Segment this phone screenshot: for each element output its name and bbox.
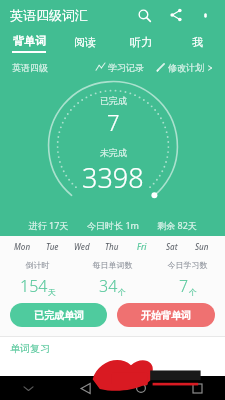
button[interactable]: 背单词 [0, 30, 57, 56]
staticText: Mon [14, 241, 31, 252]
button[interactable]: Sun [187, 236, 217, 256]
button[interactable]: 阅读 [57, 30, 113, 56]
staticText: 开始背单词 [141, 309, 191, 322]
staticText: 3398 [82, 159, 144, 196]
staticText: Thu [105, 241, 119, 252]
staticText: 英语四级词汇 [10, 7, 88, 23]
staticText: 倒计时 [0, 260, 75, 270]
button[interactable]: 我 [169, 30, 225, 56]
button[interactable]: Share [165, 4, 187, 26]
staticText: 每日单词数 [75, 260, 150, 270]
staticText: 今日学习数 [150, 260, 225, 270]
staticText: 7 [179, 275, 189, 297]
button[interactable]: Thu [97, 236, 127, 256]
button[interactable]: More options [195, 5, 215, 25]
staticText: 天 [48, 287, 56, 297]
staticText: 已完成 [100, 95, 127, 106]
staticText: 背单词 [13, 34, 46, 48]
staticText: 修改计划 [168, 62, 204, 73]
button[interactable]: 听力 [113, 30, 169, 56]
staticText: 单词复习 [10, 342, 50, 355]
staticText: Tue [46, 241, 59, 252]
staticText: 34 [99, 275, 118, 297]
button[interactable]: Fri [127, 236, 157, 256]
staticText: 英语四级 [12, 62, 48, 73]
staticText: 个 [118, 287, 126, 297]
button[interactable]: 已完成单词 [10, 303, 107, 327]
button[interactable]: Mon [8, 236, 37, 256]
button[interactable]: 修改计划 [156, 62, 213, 73]
staticText: 未完成 [100, 147, 127, 158]
staticText: 阅读 [74, 35, 96, 49]
button[interactable]: Search [133, 4, 155, 26]
button[interactable]: 开始背单词 [117, 303, 215, 327]
button[interactable]: Home [113, 376, 169, 400]
staticText: Wed [74, 241, 90, 252]
staticText: Sun [195, 241, 209, 252]
staticText: 进行 17天 [16, 219, 81, 231]
staticText: 听力 [130, 35, 152, 49]
button[interactable]: Back [57, 376, 113, 400]
button[interactable]: 学习记录 [96, 62, 144, 73]
staticText: 154 [20, 275, 48, 297]
staticText: 今日时长 1m [81, 219, 145, 231]
staticText: 剩余 82天 [145, 219, 209, 231]
staticText: 学习记录 [108, 62, 144, 73]
button[interactable]: Recent apps [169, 376, 225, 400]
button[interactable]: Hide keyboard [0, 376, 57, 400]
staticText: Sat [166, 241, 178, 252]
button[interactable]: Wed [67, 236, 97, 256]
button[interactable]: Tue [37, 236, 67, 256]
staticText: 已完成单词 [34, 309, 84, 322]
staticText: 个 [189, 287, 197, 297]
button[interactable]: Sat [157, 236, 187, 256]
staticText: Fri [137, 241, 147, 252]
staticText: 我 [192, 35, 203, 49]
staticText: 7 [107, 107, 120, 137]
button[interactable]: 单词复习 [0, 337, 225, 359]
